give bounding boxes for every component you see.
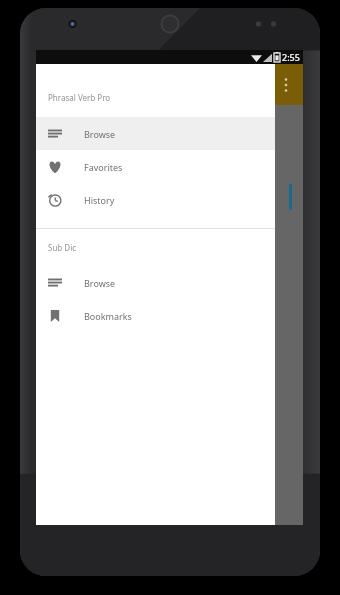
staticText: Browse [84,277,116,289]
button[interactable]: Bookmarks [36,299,275,332]
staticText: History [84,194,115,206]
button[interactable]: History [36,183,275,216]
button[interactable]: More options [276,68,296,102]
staticText: Phrasal Verb Pro [48,92,111,103]
staticText: Browse [84,128,116,140]
staticText: Sub Dic [48,242,77,253]
button[interactable]: Browse [36,266,275,299]
button[interactable]: Favorites [36,150,275,183]
staticText: 2:55 [282,51,300,63]
button[interactable]: Browse [36,117,275,150]
staticText: Bookmarks [84,310,132,322]
staticText: Favorites [84,161,123,173]
